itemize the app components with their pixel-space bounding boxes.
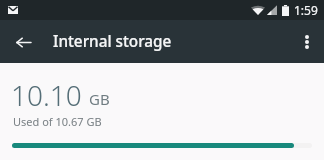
staticText: 10.10 (11, 76, 82, 114)
staticText: GB (89, 89, 110, 109)
button[interactable]: Navigate up (9, 28, 37, 56)
staticText: 1:59 (294, 2, 318, 18)
staticText: Used of 10.67 GB (13, 114, 102, 129)
staticText: Internal storage (53, 31, 172, 52)
button[interactable]: More options (293, 28, 321, 56)
button[interactable]: 10.10 (0, 63, 324, 160)
